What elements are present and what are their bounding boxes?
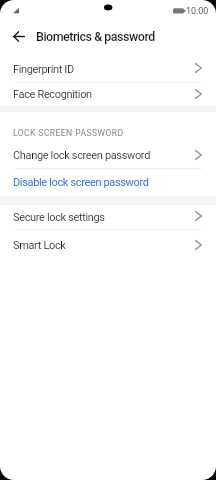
button[interactable]: Disable lock screen password [0,169,216,196]
staticText: Smart Lock [13,239,66,252]
staticText: Secure lock settings [13,211,105,224]
staticText: Change lock screen password [13,149,150,162]
staticText: Biometrics & password [36,29,155,44]
staticText: Face Recognition [13,88,92,101]
button[interactable]: Fingerprint ID [0,56,216,82]
button[interactable]: Smart Lock [0,230,216,261]
staticText: LOCK SCREEN PASSWORD [13,128,124,138]
staticText: 10:00 [186,6,209,16]
button[interactable]: Face Recognition [0,83,216,106]
staticText: Fingerprint ID [13,63,74,76]
button[interactable]: Secure lock settings [0,205,216,229]
button[interactable]: Change lock screen password [0,143,216,168]
button[interactable] [9,26,29,46]
staticText: Disable lock screen password [13,176,149,189]
